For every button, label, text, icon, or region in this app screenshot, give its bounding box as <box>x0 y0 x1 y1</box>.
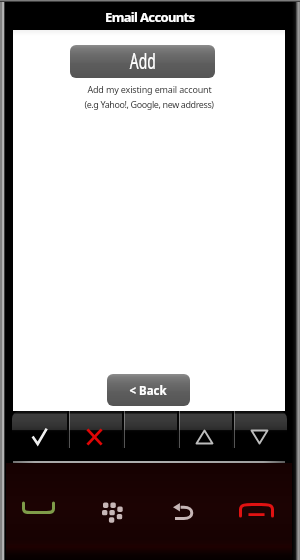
button[interactable]: BlackBerry menu <box>75 463 150 560</box>
staticText: Email Accounts <box>105 8 195 26</box>
button[interactable]: End call <box>225 463 300 560</box>
button[interactable]: Add <box>70 45 215 78</box>
staticText: < Back <box>130 381 167 399</box>
button[interactable]: Back <box>150 463 225 560</box>
button[interactable]: Scroll up <box>177 411 232 448</box>
button[interactable]: Call <box>0 463 75 560</box>
staticText: Add <box>130 47 156 76</box>
button[interactable]: Menu <box>122 411 177 448</box>
button[interactable]: Accept <box>12 411 67 448</box>
staticText: (e.g Yahoo!, Google, new address) <box>84 98 214 110</box>
button[interactable]: < Back <box>107 374 190 406</box>
button[interactable]: Reject <box>67 411 122 448</box>
button[interactable]: Scroll down <box>232 411 287 448</box>
staticText: Add my existing email account <box>87 83 212 95</box>
